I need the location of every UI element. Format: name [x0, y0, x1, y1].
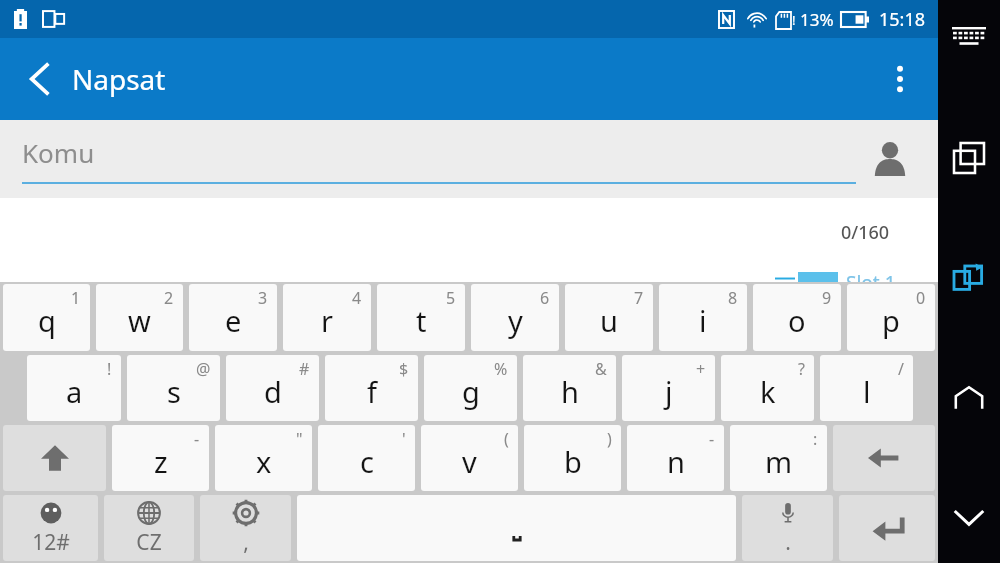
button[interactable]: Back — [16, 55, 64, 103]
staticText: y — [508, 301, 523, 340]
staticText: ! — [107, 358, 112, 380]
button[interactable]: l — [820, 355, 913, 421]
staticText: - — [194, 428, 200, 450]
staticText: r — [321, 301, 333, 340]
button[interactable]: e — [189, 284, 277, 351]
button[interactable]: b — [524, 425, 621, 491]
staticText: / — [898, 358, 904, 380]
staticText: , — [243, 528, 249, 557]
staticText: 12# — [32, 528, 70, 557]
staticText: s — [167, 372, 181, 411]
button[interactable]: Komu — [22, 135, 856, 184]
button[interactable]: , — [200, 495, 291, 561]
button[interactable]: q — [3, 284, 90, 351]
button[interactable]: 12# — [3, 495, 98, 561]
button[interactable]: w — [96, 284, 183, 351]
staticText: k — [760, 372, 776, 411]
button[interactable]: z — [112, 425, 209, 491]
staticText: o — [788, 301, 806, 340]
staticText: h — [561, 372, 579, 411]
staticText: l — [863, 372, 871, 411]
staticText: p — [882, 301, 900, 340]
button[interactable]: CZ — [104, 495, 194, 561]
button[interactable]: j — [622, 355, 715, 421]
button[interactable]: a — [27, 355, 121, 421]
button[interactable]: x — [215, 425, 312, 491]
button[interactable]: h — [523, 355, 616, 421]
button[interactable]: Add contact — [862, 131, 918, 187]
staticText: 5 — [446, 287, 456, 309]
staticText: # — [299, 358, 310, 380]
staticText: d — [264, 372, 282, 411]
button[interactable]: d — [226, 355, 319, 421]
button[interactable]: s — [127, 355, 220, 421]
staticText: & — [595, 358, 607, 380]
staticText: 4 — [352, 287, 362, 309]
staticText: g — [462, 372, 480, 411]
staticText: 2 — [164, 287, 174, 309]
staticText: " — [296, 428, 303, 450]
staticText: 6 — [540, 287, 550, 309]
button[interactable]: y — [471, 284, 559, 351]
button[interactable]: Hide keyboard — [940, 8, 998, 66]
staticText: ! — [792, 11, 796, 29]
staticText: 13% — [800, 8, 834, 31]
staticText: e — [225, 301, 242, 340]
staticText: w — [128, 301, 151, 340]
button[interactable]: Rotate screen — [940, 249, 998, 307]
staticText: 7 — [634, 287, 644, 309]
staticText: m — [765, 442, 793, 481]
button[interactable]: m — [730, 425, 827, 491]
button[interactable]: i — [659, 284, 747, 351]
staticText: 1 — [71, 287, 81, 309]
staticText: ) — [607, 428, 612, 450]
button[interactable]: Space — [297, 495, 736, 561]
staticText: 0/160 — [841, 220, 890, 245]
staticText: 8 — [728, 287, 738, 309]
staticText: t — [416, 301, 427, 340]
button[interactable]: o — [753, 284, 841, 351]
staticText: 3 — [258, 287, 268, 309]
staticText: Komu — [22, 135, 95, 170]
staticText: Napsat — [72, 60, 166, 98]
button[interactable]: Collapse — [940, 489, 998, 547]
button[interactable]: More options — [874, 53, 926, 105]
button[interactable]: g — [424, 355, 517, 421]
staticText: % — [494, 358, 508, 380]
button[interactable]: Enter — [839, 495, 935, 561]
button[interactable]: t — [377, 284, 465, 351]
staticText: q — [38, 301, 56, 340]
button[interactable]: Shift — [3, 425, 106, 491]
staticText: 0 — [916, 287, 926, 309]
staticText: b — [564, 442, 582, 481]
button[interactable]: r — [283, 284, 371, 351]
staticText: f — [367, 372, 377, 411]
button[interactable]: f — [325, 355, 418, 421]
staticText: @ — [196, 358, 211, 380]
staticText: CZ — [136, 528, 162, 557]
staticText: n — [667, 442, 685, 481]
staticText: 9 — [822, 287, 832, 309]
staticText: v — [462, 442, 477, 481]
staticText: c — [360, 442, 374, 481]
staticText: ' — [402, 428, 406, 450]
staticText: - — [709, 428, 715, 450]
button[interactable]: k — [721, 355, 814, 421]
staticText: j — [665, 372, 673, 411]
button[interactable]: n — [627, 425, 724, 491]
staticText: 15:18 — [879, 7, 926, 32]
button[interactable]: Recents — [940, 129, 998, 187]
staticText: : — [813, 428, 818, 450]
staticText: + — [696, 358, 706, 380]
staticText: ( — [504, 428, 509, 450]
staticText: z — [154, 442, 168, 481]
button[interactable]: c — [318, 425, 415, 491]
button[interactable]: u — [565, 284, 653, 351]
button[interactable]: Backspace — [833, 425, 935, 491]
button[interactable]: . — [742, 495, 833, 561]
button[interactable]: Home — [940, 369, 998, 427]
staticText: Slot 1 — [846, 270, 896, 296]
button[interactable]: v — [421, 425, 518, 491]
button[interactable]: p — [847, 284, 935, 351]
staticText: u — [600, 301, 618, 340]
